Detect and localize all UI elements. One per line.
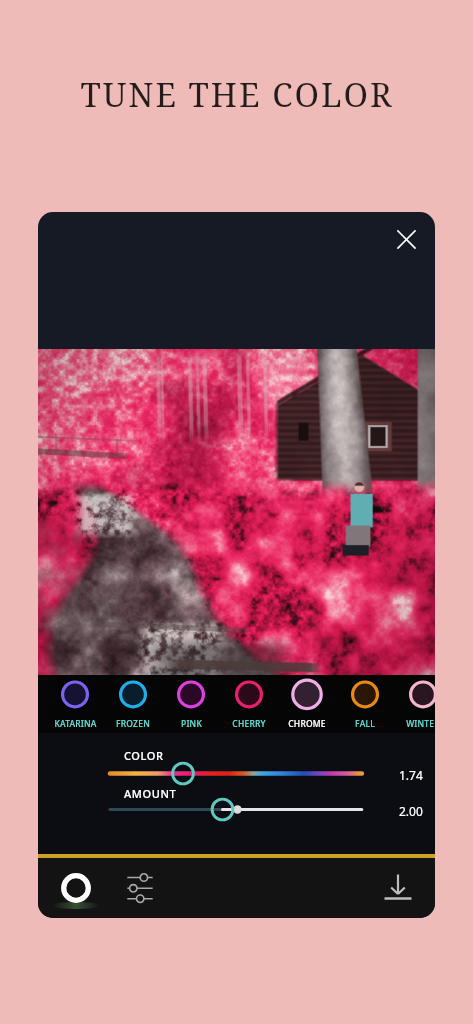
button[interactable]: Adjust [120,868,160,908]
staticText: 1.74 [399,767,423,783]
staticText: WINTER [406,718,435,730]
staticText: TUNE THE COLOR [80,72,394,117]
button[interactable]: CHROME [280,675,334,733]
button[interactable]: COLOR [38,733,435,781]
button[interactable]: Filters [54,866,98,910]
button[interactable]: Save [376,866,420,910]
staticText: 2.00 [399,803,423,819]
staticText: CHERRY [232,718,266,730]
staticText: COLOR [124,748,164,763]
staticText: KATARINA [54,718,97,730]
image: Edited photo [38,349,435,675]
staticText: PINK [181,718,202,730]
staticText: AMOUNT [124,786,177,801]
button[interactable]: FALL [338,675,392,733]
staticText: CHROME [288,718,326,730]
button[interactable]: KATARINA [48,675,102,733]
button[interactable]: FROZEN [106,675,160,733]
button[interactable]: WINTER [396,675,435,733]
staticText: FALL [355,718,375,730]
staticText: FROZEN [116,718,150,730]
button[interactable]: Close [390,223,422,255]
button[interactable]: AMOUNT [38,773,435,823]
button[interactable]: CHERRY [222,675,276,733]
button[interactable]: PINK [164,675,218,733]
